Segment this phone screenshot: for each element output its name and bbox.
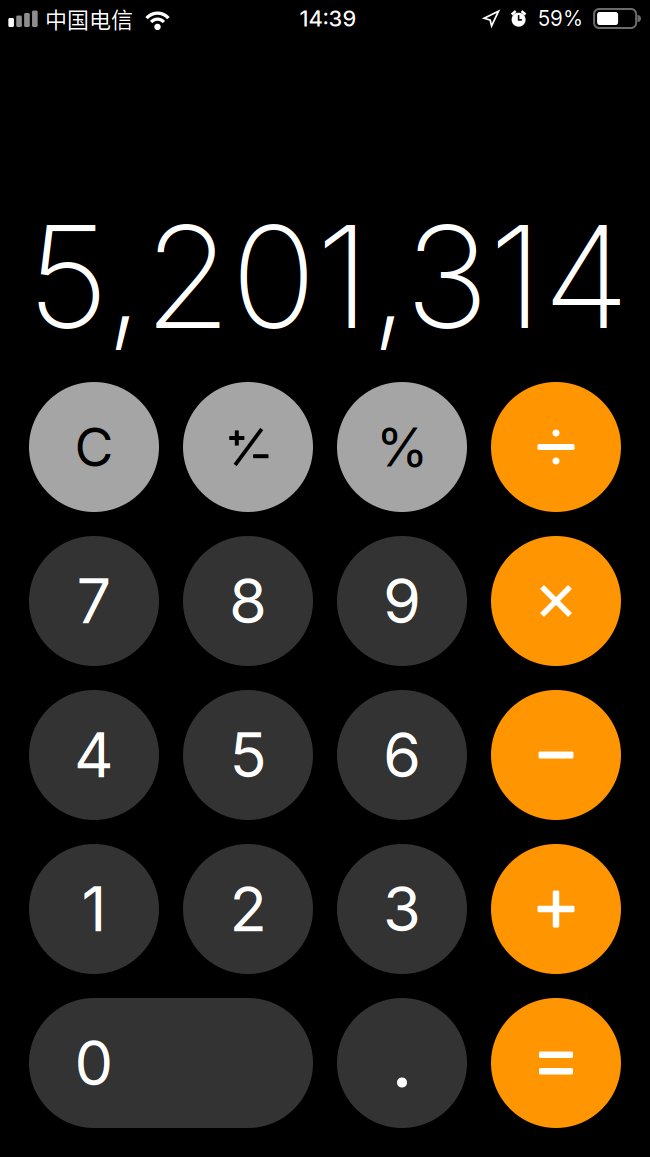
button[interactable]: 8 <box>183 536 313 666</box>
staticText: 1 <box>81 872 106 946</box>
staticText: 5 <box>229 718 266 792</box>
button[interactable]: 0 <box>29 998 313 1128</box>
staticText: 4 <box>74 718 114 792</box>
button[interactable]: Plus minus <box>183 382 313 512</box>
staticText: 59% <box>538 6 583 31</box>
staticText: C <box>74 415 113 479</box>
staticText: 0 <box>74 1026 113 1100</box>
staticText: 8 <box>229 564 267 638</box>
staticText: 2 <box>229 872 266 946</box>
button[interactable]: Clear <box>29 382 159 512</box>
staticText: 5,201,314 <box>27 191 629 362</box>
button[interactable]: 7 <box>29 536 159 666</box>
staticText: 6 <box>383 718 421 792</box>
button[interactable]: Add <box>491 844 621 974</box>
staticText: 7 <box>76 564 111 638</box>
button[interactable]: Divide <box>491 382 621 512</box>
button[interactable]: 3 <box>337 844 467 974</box>
button[interactable]: Percent <box>337 382 467 512</box>
staticText: 中国电信 <box>45 3 133 34</box>
button[interactable]: 1 <box>29 844 159 974</box>
button[interactable]: Subtract <box>491 690 621 820</box>
button[interactable]: 5 <box>183 690 313 820</box>
staticText: % <box>376 415 428 479</box>
staticText: 14:39 <box>300 5 357 32</box>
button[interactable]: 4 <box>29 690 159 820</box>
button[interactable]: 6 <box>337 690 467 820</box>
staticText: 3 <box>383 872 421 946</box>
button[interactable]: Multiply <box>491 536 621 666</box>
staticText: 9 <box>383 564 421 638</box>
button[interactable]: Equals <box>491 998 621 1128</box>
button[interactable]: 9 <box>337 536 467 666</box>
button[interactable]: 2 <box>183 844 313 974</box>
button[interactable]: Decimal point <box>337 998 467 1128</box>
